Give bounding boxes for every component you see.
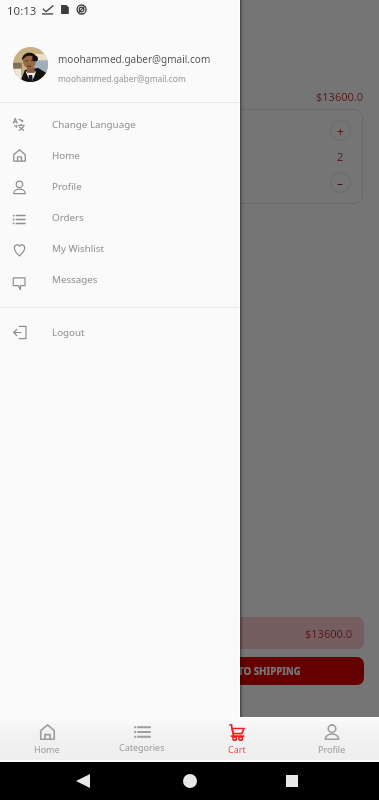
button[interactable]: Profile [284,717,379,762]
button[interactable]: Profile [0,171,240,202]
button[interactable]: Cart [189,717,284,762]
staticText: Logout [52,326,85,339]
button[interactable]: Orders [0,202,240,233]
button[interactable]: Logout [0,317,240,348]
button[interactable]: CONTINUE TO SHIPPING [15,657,364,685]
other: Home [183,774,197,788]
staticText: moohammed.gaber@gmail.com [58,52,211,66]
staticText: Messages [52,273,98,286]
staticText: Orders [52,211,84,224]
button[interactable]: Decrease quantity [330,172,351,193]
staticText: $13600.0 [305,626,352,641]
button[interactable]: My Wishlist [0,233,240,264]
button[interactable]: Increase quantity [330,120,351,141]
button[interactable]: Total [15,617,364,649]
staticText: Home [52,149,80,162]
other: Back [76,774,90,788]
staticText: moohammed.gaber@gmail.com [58,73,186,84]
staticText: Home [34,743,60,755]
button[interactable]: Categories [94,717,189,762]
staticText: 10:13 [7,3,37,19]
staticText: My Wishlist [52,242,105,255]
button[interactable]: Change Language [0,109,240,140]
staticText: Cart [228,743,246,755]
staticText: – [337,175,344,191]
staticText: Categories [119,741,165,753]
staticText: Change Language [52,118,136,131]
button[interactable]: Home [0,717,94,762]
staticText: Profile [52,180,82,193]
staticText: + [337,123,344,139]
staticText: CONTINUE TO SHIPPING [184,665,301,678]
staticText: 2 [337,149,344,164]
button[interactable]: Messages [0,264,240,295]
button[interactable]: Home [0,140,240,171]
staticText: Profile [318,743,346,755]
staticText: $13600.0 [316,89,363,104]
